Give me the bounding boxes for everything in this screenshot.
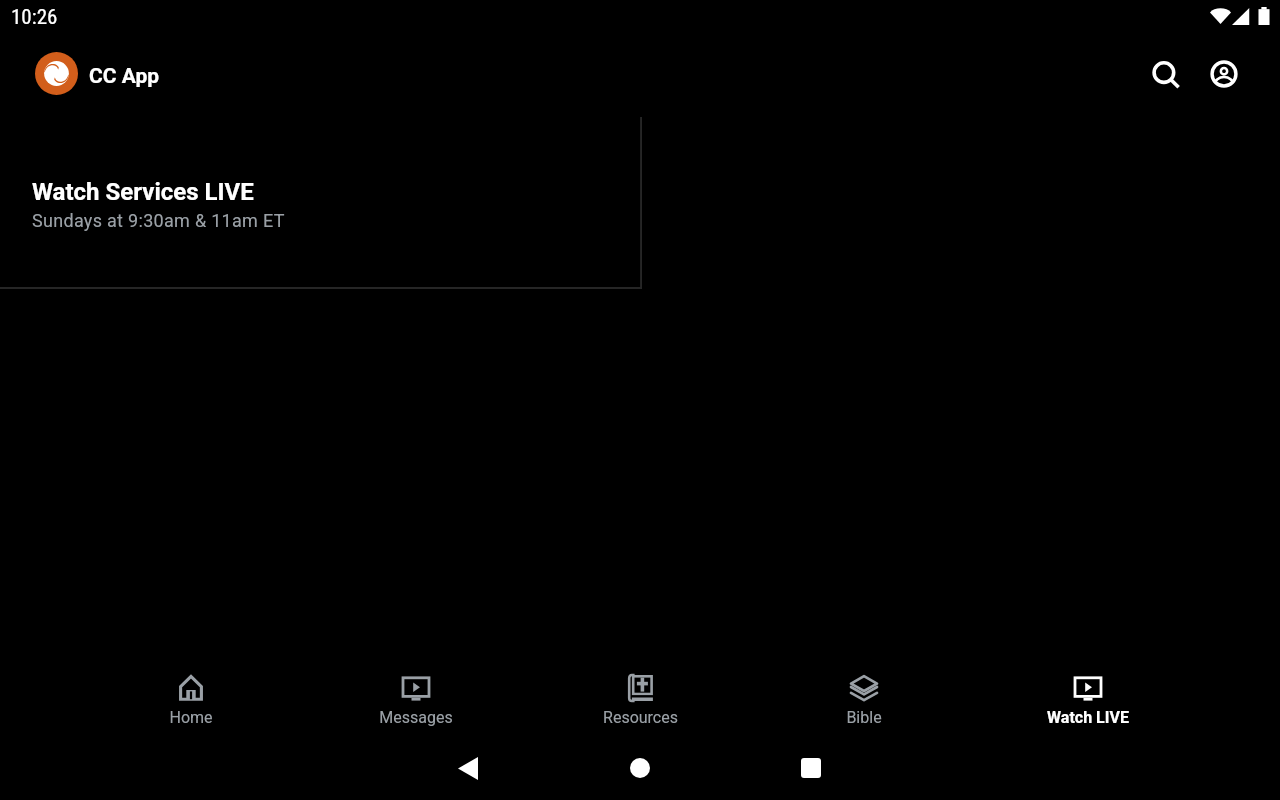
staticText: Watch Services LIVE	[32, 178, 254, 206]
staticText: Resources	[603, 708, 678, 727]
button[interactable]: Recents	[787, 744, 835, 792]
staticText: Sundays at 9:30am & 11am ET	[32, 210, 285, 231]
button[interactable]: Bible	[752, 665, 976, 729]
staticText: Messages	[379, 708, 453, 727]
staticText: Bible	[846, 708, 882, 727]
button[interactable]: Account	[1200, 50, 1248, 98]
button[interactable]: App logo	[35, 52, 78, 95]
button[interactable]: Search	[1140, 51, 1188, 99]
staticText: 10:26	[11, 5, 58, 30]
button[interactable]: Home	[78, 665, 303, 729]
button[interactable]: Watch LIVE	[976, 665, 1200, 729]
button[interactable]: Resources	[528, 665, 752, 729]
staticText: CC App	[89, 64, 160, 89]
staticText: Watch LIVE	[1047, 708, 1129, 727]
button[interactable]: Back	[444, 744, 492, 792]
button[interactable]: Home	[616, 744, 664, 792]
staticText: Home	[169, 708, 213, 727]
button[interactable]: Watch Services LIVE	[0, 117, 642, 289]
button[interactable]: Messages	[303, 665, 528, 729]
